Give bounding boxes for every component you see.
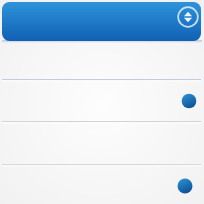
button[interactable]: Status	[0, 164, 204, 204]
button[interactable]: Expand	[176, 5, 200, 29]
button[interactable]: Status	[176, 177, 194, 195]
button[interactable]: Status	[180, 92, 198, 110]
button[interactable]	[0, 121, 204, 164]
button[interactable]: Expand	[2, 2, 201, 41]
button[interactable]: Status	[0, 79, 204, 121]
button[interactable]	[0, 40, 204, 79]
